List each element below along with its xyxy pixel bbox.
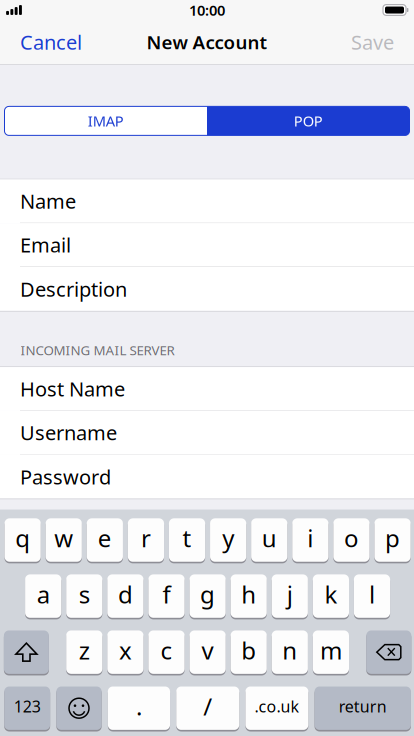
- staticText: p: [385, 522, 400, 554]
- staticText: h: [241, 578, 256, 610]
- button[interactable]: t: [169, 518, 205, 563]
- button[interactable]: m: [313, 630, 349, 675]
- button[interactable]: .co.uk: [245, 686, 308, 731]
- button[interactable]: POP: [207, 106, 409, 135]
- button[interactable]: IMAP: [4, 106, 207, 135]
- button[interactable]: a: [25, 574, 61, 619]
- staticText: z: [79, 634, 90, 666]
- button[interactable]: Delete: [366, 630, 411, 675]
- button[interactable]: u: [251, 518, 287, 563]
- staticText: Username: [20, 419, 117, 446]
- staticText: IMAP: [88, 111, 124, 131]
- button[interactable]: Description: [0, 267, 414, 311]
- staticText: INCOMING MAIL SERVER: [20, 341, 174, 359]
- button[interactable]: n: [272, 630, 308, 675]
- button[interactable]: d: [107, 574, 143, 619]
- staticText: g: [200, 578, 215, 610]
- button[interactable]: b: [231, 630, 267, 675]
- button[interactable]: Email: [0, 223, 414, 267]
- button[interactable]: /: [176, 686, 239, 731]
- staticText: Name: [20, 188, 76, 214]
- staticText: u: [262, 522, 277, 554]
- button[interactable]: Save: [347, 20, 398, 64]
- staticText: l: [369, 578, 375, 610]
- staticText: Cancel: [20, 29, 82, 55]
- button[interactable]: Password: [0, 455, 414, 499]
- button[interactable]: .: [108, 686, 170, 731]
- button[interactable]: Host Name: [0, 367, 414, 411]
- staticText: return: [339, 696, 387, 717]
- staticText: Description: [20, 276, 127, 302]
- staticText: b: [241, 634, 256, 666]
- staticText: t: [183, 522, 192, 554]
- staticText: c: [160, 634, 172, 666]
- button[interactable]: l: [354, 574, 390, 619]
- button[interactable]: y: [210, 518, 246, 563]
- button[interactable]: Name: [0, 179, 414, 223]
- button[interactable]: o: [333, 518, 370, 563]
- button[interactable]: Emoji: [56, 686, 102, 731]
- staticText: e: [98, 522, 112, 554]
- staticText: 123: [14, 696, 41, 717]
- staticText: x: [119, 634, 132, 666]
- staticText: 10:00: [189, 0, 225, 20]
- staticText: y: [222, 522, 234, 554]
- staticText: New Account: [146, 30, 267, 54]
- button[interactable]: s: [66, 574, 102, 619]
- staticText: d: [118, 578, 133, 610]
- button[interactable]: e: [87, 518, 123, 563]
- staticText: o: [344, 522, 359, 554]
- staticText: s: [79, 578, 90, 610]
- staticText: q: [15, 522, 30, 554]
- staticText: .: [136, 690, 142, 722]
- staticText: r: [141, 522, 151, 554]
- staticText: i: [307, 522, 313, 554]
- button[interactable]: f: [148, 574, 185, 619]
- staticText: k: [324, 578, 337, 610]
- staticText: Host Name: [20, 375, 125, 402]
- staticText: Email: [20, 231, 71, 258]
- staticText: a: [37, 578, 50, 610]
- button[interactable]: j: [272, 574, 308, 619]
- button[interactable]: Cancel: [16, 20, 86, 64]
- button[interactable]: h: [231, 574, 267, 619]
- staticText: m: [320, 634, 342, 666]
- staticText: w: [54, 522, 73, 554]
- staticText: Password: [20, 463, 111, 490]
- button[interactable]: i: [292, 518, 328, 563]
- button[interactable]: w: [46, 518, 82, 563]
- staticText: v: [202, 634, 214, 666]
- staticText: f: [162, 578, 170, 610]
- button[interactable]: z: [66, 630, 102, 675]
- staticText: .co.uk: [254, 696, 299, 717]
- button[interactable]: k: [313, 574, 349, 619]
- staticText: Save: [351, 29, 394, 55]
- button[interactable]: Username: [0, 411, 414, 455]
- button[interactable]: 123: [4, 686, 50, 731]
- button[interactable]: return: [314, 686, 411, 731]
- button[interactable]: g: [189, 574, 226, 619]
- button[interactable]: p: [374, 518, 411, 563]
- button[interactable]: v: [189, 630, 226, 675]
- button[interactable]: x: [107, 630, 143, 675]
- button[interactable]: q: [5, 518, 41, 563]
- button[interactable]: Shift: [4, 630, 49, 675]
- staticText: j: [287, 578, 293, 610]
- button[interactable]: c: [148, 630, 185, 675]
- button[interactable]: r: [128, 518, 164, 563]
- staticText: /: [203, 690, 212, 722]
- staticText: POP: [294, 111, 323, 131]
- staticText: n: [282, 634, 297, 666]
